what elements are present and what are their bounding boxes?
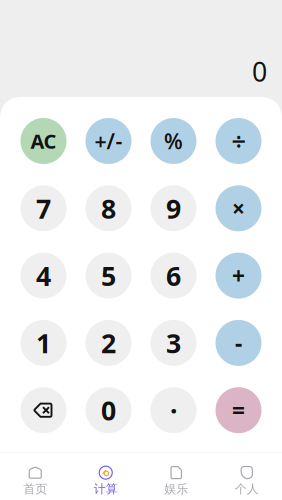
staticText: 0 [101,392,116,428]
button[interactable]: 娱乐 [141,451,211,500]
button[interactable]: ÷ [215,118,261,164]
staticText: ÷ [231,124,245,158]
button[interactable]: + [215,253,261,299]
button[interactable]: 2 [85,320,131,366]
staticText: 8 [101,191,116,226]
staticText: × [232,193,245,223]
button[interactable]: % [150,118,196,164]
button[interactable]: 9 [150,185,196,231]
staticText: 5 [101,258,116,293]
button[interactable]: AC [20,118,66,164]
button[interactable]: 首页 [0,451,70,500]
button[interactable]: Delete [20,387,66,433]
staticText: · [170,392,177,428]
button[interactable]: +/- [85,118,131,164]
staticText: 娱乐 [164,482,188,496]
staticText: 1 [36,325,51,361]
staticText: 0 [252,54,267,89]
button[interactable]: 5 [85,253,131,299]
button[interactable]: 3 [150,320,196,366]
staticText: 2 [101,325,116,361]
staticText: 计算 [94,482,118,496]
staticText: 6 [166,258,181,293]
button[interactable]: · [150,387,196,433]
button[interactable]: 1 [20,320,66,366]
staticText: 9 [166,191,181,226]
button[interactable]: 6 [150,253,196,299]
button[interactable]: 计算 [70,451,141,500]
button[interactable]: 8 [85,185,131,231]
staticText: 4 [36,258,51,293]
staticText: - [235,328,242,358]
staticText: % [164,127,183,155]
staticText: AC [30,128,56,154]
button[interactable]: 个人 [211,451,282,500]
button[interactable]: × [215,185,261,231]
button[interactable]: = [215,387,261,433]
staticText: = [232,395,245,425]
button[interactable]: 7 [20,185,66,231]
staticText: 首页 [23,482,47,496]
button[interactable]: 0 [85,387,131,433]
button[interactable]: - [215,320,261,366]
staticText: 个人 [235,482,259,496]
staticText: 7 [36,191,51,226]
staticText: 3 [166,325,181,361]
staticText: +/- [94,127,122,155]
button[interactable]: 4 [20,253,66,299]
staticText: + [232,260,245,291]
